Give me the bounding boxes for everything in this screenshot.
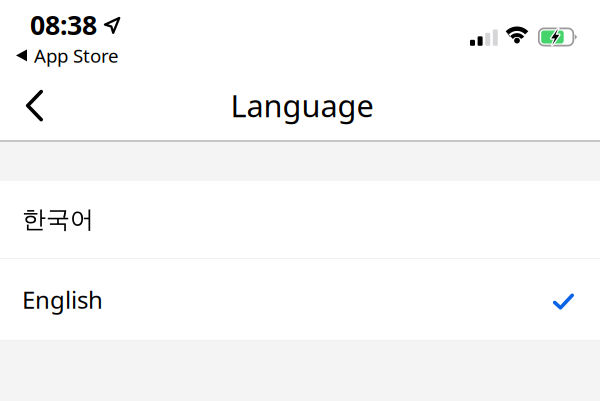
staticText: 한국어	[22, 205, 94, 234]
staticText: 08:38	[30, 7, 97, 42]
staticText: Language	[230, 85, 373, 126]
staticText: English	[22, 284, 103, 315]
staticText: App Store	[34, 43, 119, 68]
button[interactable]: App Store	[11, 40, 124, 71]
button[interactable]: Back	[14, 80, 55, 131]
button[interactable]: English	[0, 259, 600, 340]
button[interactable]: 한국어	[0, 181, 600, 258]
